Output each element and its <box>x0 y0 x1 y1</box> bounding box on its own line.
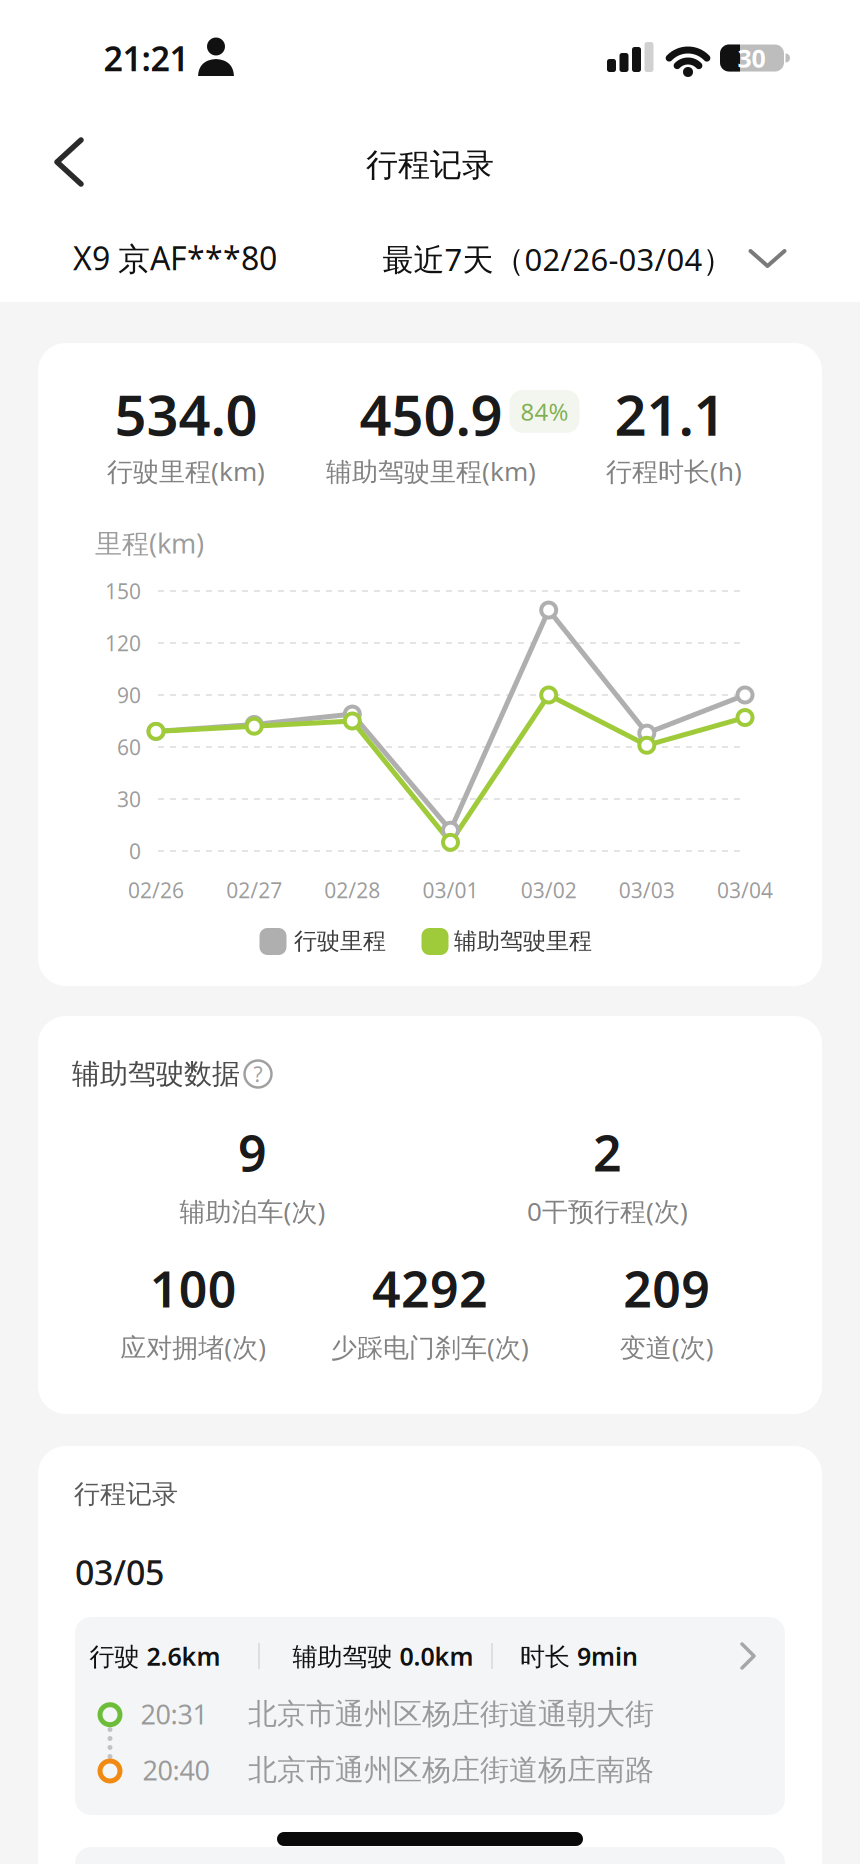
staticText: 100 <box>150 1254 237 1322</box>
staticText: 2 <box>593 1118 622 1186</box>
staticText: 20:40 <box>142 1752 209 1788</box>
staticText: 03/03 <box>619 876 675 904</box>
staticText: 行程记录 <box>366 145 494 185</box>
staticText: 少踩电门刹车(次) <box>331 1329 529 1365</box>
staticText: 209 <box>623 1254 710 1322</box>
staticText: 84% <box>520 395 568 428</box>
button[interactable]: X9 京AF***80 <box>73 236 373 280</box>
staticText: 应对拥堵(次) <box>120 1329 266 1365</box>
staticText: 02/27 <box>226 876 282 904</box>
staticText: 辅助驾驶数据 <box>72 1056 240 1092</box>
staticText: 北京市通州区杨庄街道通朝大街 <box>248 1696 654 1732</box>
staticText: 03/04 <box>717 876 773 904</box>
staticText: 60 <box>117 733 141 761</box>
button[interactable]: 帮助 <box>244 1060 272 1088</box>
staticText: 行程记录 <box>74 1478 178 1510</box>
staticText: ? <box>253 1060 262 1088</box>
staticText: 21.1 <box>614 376 725 452</box>
staticText: 03/05 <box>75 1549 164 1595</box>
staticText: 03/01 <box>422 876 478 904</box>
staticText: 行程时长(h) <box>606 453 742 489</box>
staticText: 120 <box>105 629 141 657</box>
staticText: 辅助驾驶里程(km) <box>326 453 536 489</box>
staticText: 30 <box>737 41 765 75</box>
staticText: 534.0 <box>114 376 257 452</box>
staticText: 4292 <box>372 1254 488 1322</box>
staticText: 里程(km) <box>95 525 204 561</box>
button[interactable]: 最近7天（02/26-03/04） <box>382 238 787 280</box>
staticText: 03/02 <box>521 876 577 904</box>
staticText: 行驶里程(km) <box>107 453 265 489</box>
staticText: 21:21 <box>103 35 188 81</box>
staticText: 辅助驾驶 0.0km <box>292 1639 473 1673</box>
staticText: 9 <box>238 1118 267 1186</box>
staticText: 变道(次) <box>620 1329 714 1365</box>
staticText: 20:31 <box>140 1696 207 1732</box>
staticText: 30 <box>117 785 141 813</box>
staticText: 最近7天（02/26-03/04） <box>382 238 733 280</box>
staticText: 0 <box>129 837 141 865</box>
staticText: 行驶 2.6km <box>89 1639 220 1673</box>
button[interactable]: 返回 <box>44 137 94 187</box>
staticText: 行驶里程 <box>294 926 386 955</box>
staticText: 150 <box>105 577 141 605</box>
staticText: 02/28 <box>324 876 380 904</box>
staticText: 02/26 <box>128 876 184 904</box>
staticText: 辅助泊车(次) <box>179 1193 325 1229</box>
staticText: 90 <box>117 681 141 709</box>
staticText: 450.9 <box>359 376 502 452</box>
staticText: 北京市通州区杨庄街道杨庄南路 <box>248 1752 654 1788</box>
button[interactable]: 行驶 2.6km <box>75 1617 785 1815</box>
staticText: 辅助驾驶里程 <box>454 926 592 955</box>
staticText: 时长 9min <box>520 1639 638 1673</box>
staticText: X9 京AF***80 <box>73 236 277 280</box>
staticText: 0干预行程(次) <box>527 1193 688 1229</box>
